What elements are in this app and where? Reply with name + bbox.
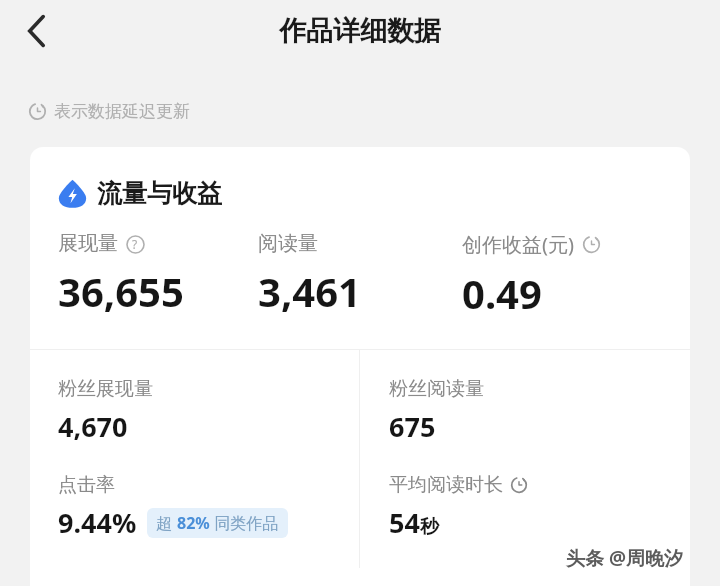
staticText: 粉丝展现量 — [58, 377, 153, 401]
staticText: 秒 — [420, 515, 439, 539]
staticText: 表示数据延迟更新 — [54, 101, 190, 122]
staticText: 头条 @周晚汐 — [566, 545, 684, 571]
staticText: 阅读量 — [258, 231, 318, 256]
staticText: 36,655 — [58, 264, 184, 318]
staticText: 流量与收益 — [97, 178, 222, 209]
staticText: 创作收益(元) — [462, 231, 574, 258]
staticText: 点击率 — [58, 473, 115, 497]
staticText: 82% — [177, 512, 210, 534]
staticText: 粉丝阅读量 — [389, 377, 484, 401]
staticText: 9.44% — [58, 504, 137, 541]
staticText: 4,670 — [58, 408, 128, 445]
staticText: 展现量 — [58, 231, 118, 256]
staticText: 3,461 — [258, 264, 361, 318]
staticText: ? — [132, 236, 138, 252]
button[interactable]: Help — [125, 234, 145, 254]
staticText: 同类作品 — [210, 512, 279, 534]
button[interactable]: 流量与收益 — [58, 178, 222, 209]
staticText: 0.49 — [462, 266, 542, 320]
staticText: 54 — [389, 504, 420, 541]
staticText: 675 — [389, 408, 436, 445]
button[interactable]: Back — [8, 0, 66, 62]
staticText: 作品详细数据 — [0, 14, 720, 48]
staticText: 平均阅读时长 — [389, 473, 503, 497]
staticText: 超 — [156, 512, 177, 534]
